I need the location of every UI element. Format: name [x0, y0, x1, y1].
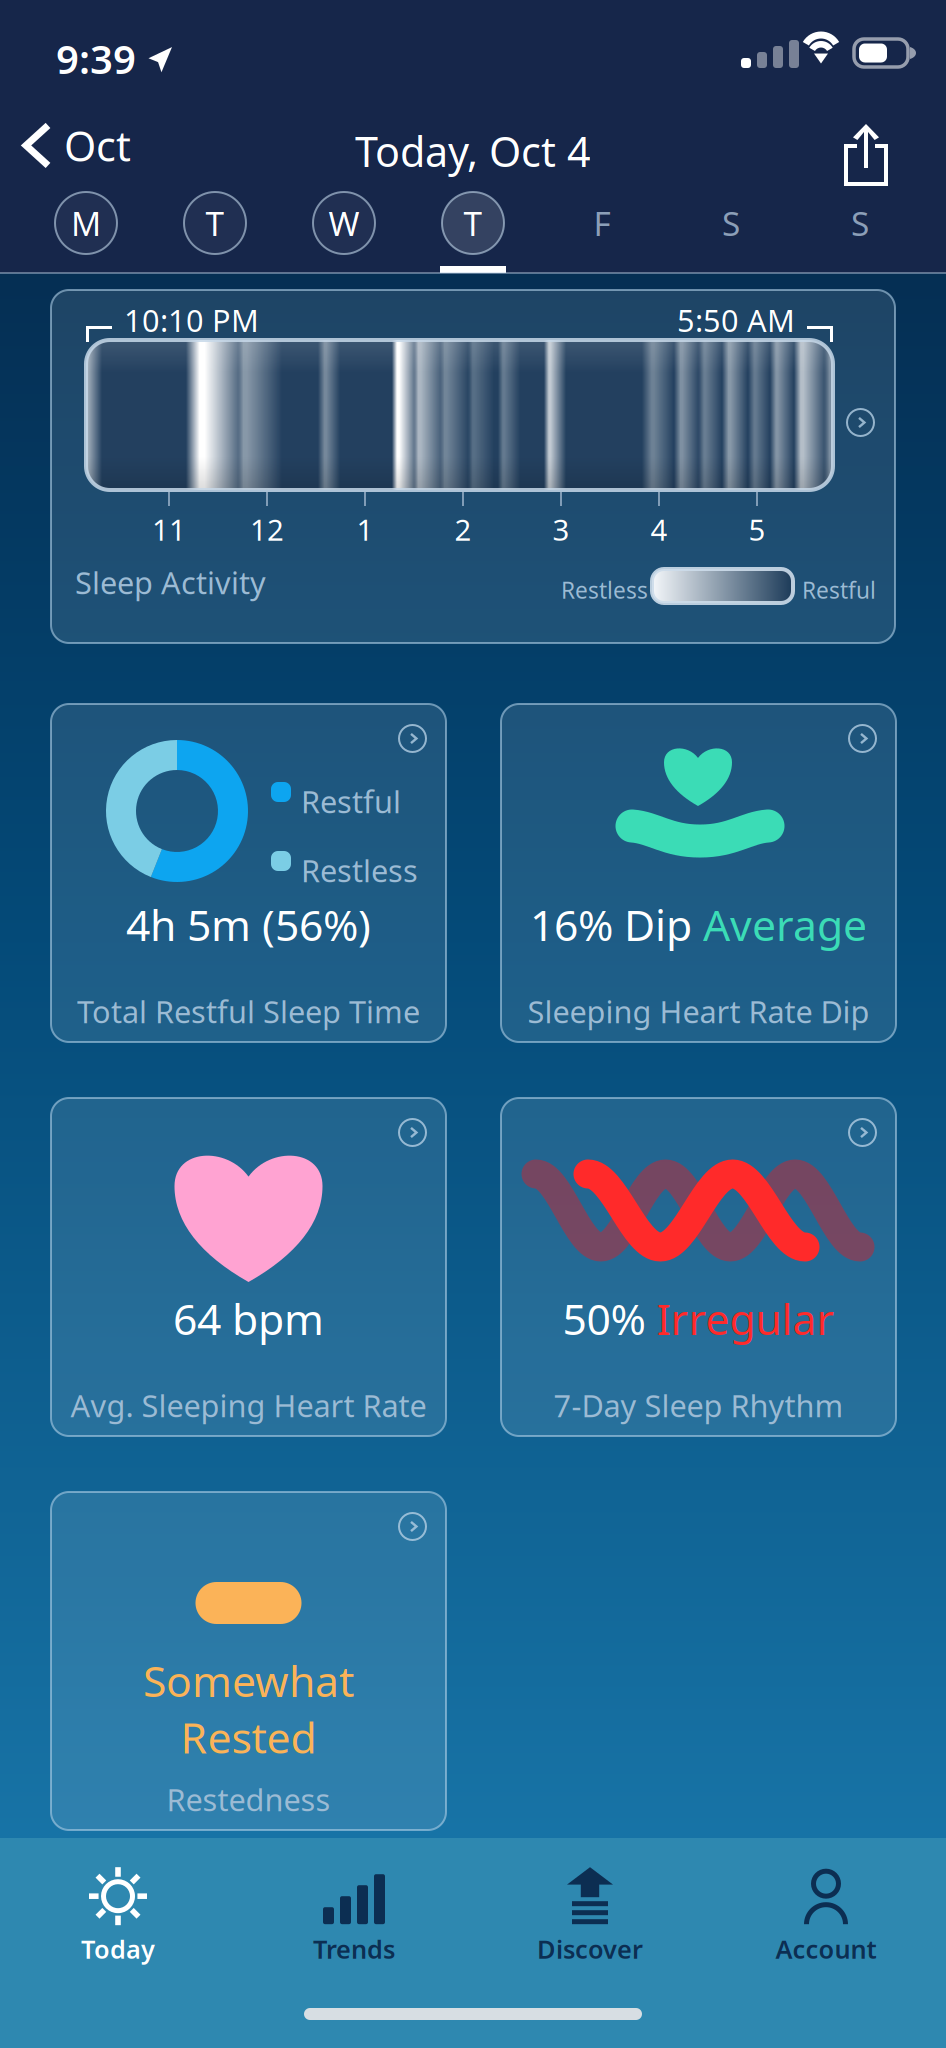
button[interactable]: S	[681, 185, 781, 261]
staticText: M	[71, 201, 101, 245]
button[interactable]: 16% Dip	[501, 704, 896, 1042]
button[interactable]: Today	[0, 1852, 236, 1982]
staticText: Average	[703, 896, 867, 953]
staticText: Trends	[313, 1932, 395, 1966]
staticText: Restless	[561, 575, 648, 605]
staticText: 5:50 AM	[677, 300, 795, 340]
button[interactable]: F	[552, 185, 652, 261]
staticText: 16% Dip	[530, 896, 703, 953]
staticText: 9:39	[56, 32, 136, 85]
staticText: Restful	[301, 781, 401, 822]
staticText: Restedness	[166, 1779, 330, 1820]
staticText: Avg. Sleeping Heart Rate	[70, 1385, 426, 1426]
staticText: T	[463, 201, 482, 245]
button[interactable]: Somewhat	[51, 1492, 446, 1830]
staticText: Rested	[180, 1709, 316, 1765]
staticText: W	[328, 201, 359, 245]
staticText: S	[851, 201, 869, 245]
button[interactable]: Trends	[236, 1852, 472, 1982]
staticText: Restful	[802, 575, 876, 605]
staticText: Discover	[537, 1932, 643, 1966]
staticText: Today	[81, 1932, 155, 1966]
staticText: 2	[454, 510, 471, 549]
button[interactable]: Account	[708, 1852, 944, 1982]
staticText: 12	[250, 510, 284, 549]
staticText: S	[722, 201, 740, 245]
staticText: 10:10 PM	[124, 300, 259, 340]
staticText: T	[205, 201, 224, 245]
staticText: 7-Day Sleep Rhythm	[553, 1385, 843, 1426]
button[interactable]: M	[36, 185, 136, 261]
staticText: Today, Oct 4	[355, 124, 591, 178]
button[interactable]: 64 bpm	[51, 1098, 446, 1436]
staticText: F	[593, 201, 610, 245]
staticText: 4	[650, 510, 667, 549]
button[interactable]: Oct	[8, 108, 149, 183]
staticText: Oct	[64, 118, 131, 173]
button[interactable]: W	[294, 185, 394, 261]
button[interactable]: S	[810, 185, 910, 261]
button[interactable]: T	[165, 185, 265, 261]
staticText: Account	[775, 1932, 876, 1966]
staticText: Irregular	[656, 1290, 834, 1347]
staticText: 4h 5m (56%)	[126, 896, 371, 953]
staticText: Total Restful Sleep Time	[77, 991, 420, 1032]
staticText: Somewhat	[143, 1652, 354, 1709]
staticText: Restless	[301, 850, 418, 891]
staticText: Sleep Activity	[75, 562, 266, 603]
staticText: 3	[552, 510, 569, 549]
staticText: 1	[356, 510, 373, 549]
button[interactable]: 10:10 PM	[51, 290, 895, 643]
staticText: 5	[748, 510, 765, 549]
staticText: 64 bpm	[173, 1290, 324, 1347]
button[interactable]: Restful	[51, 704, 446, 1042]
button[interactable]: Discover	[472, 1852, 708, 1982]
staticText: Sleeping Heart Rate Dip	[527, 991, 869, 1032]
button[interactable]: 50%	[501, 1098, 896, 1436]
button[interactable]: T	[423, 185, 523, 261]
staticText: 11	[152, 510, 186, 549]
button[interactable]: Share	[834, 114, 898, 196]
staticText: 50%	[562, 1290, 656, 1347]
